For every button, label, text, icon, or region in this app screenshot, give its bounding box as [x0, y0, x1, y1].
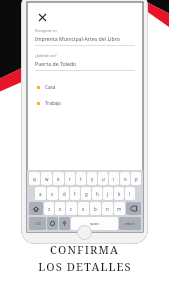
button[interactable]: 123	[29, 217, 46, 230]
staticText: n	[106, 206, 109, 212]
button[interactable]: p	[131, 172, 141, 185]
button[interactable]: Shift	[29, 202, 43, 215]
button[interactable]: Backspace	[126, 202, 141, 215]
staticText: m	[117, 206, 122, 212]
staticText: 123	[35, 222, 41, 226]
button[interactable]: u	[98, 172, 108, 185]
button[interactable]: e	[53, 172, 64, 185]
staticText: l	[129, 191, 131, 197]
button[interactable]: ¿Adónde vas?	[35, 53, 135, 71]
staticText: e	[57, 176, 60, 182]
staticText: o	[124, 176, 127, 182]
button[interactable]: space	[71, 217, 118, 230]
staticText: f	[74, 191, 76, 197]
button[interactable]: r	[65, 172, 75, 185]
staticText: d	[63, 191, 66, 197]
staticText: a	[39, 191, 42, 197]
staticText: space	[90, 221, 100, 226]
button[interactable]: a	[35, 187, 46, 200]
staticText: i	[113, 176, 115, 182]
button[interactable]: Dictate	[59, 217, 70, 230]
button[interactable]: Close	[35, 10, 49, 24]
staticText: j	[107, 191, 109, 197]
staticText: w	[45, 176, 49, 182]
button[interactable]: l	[125, 187, 135, 200]
button[interactable]: k	[114, 187, 124, 200]
staticText: b	[94, 206, 97, 212]
button[interactable]: c	[66, 202, 77, 215]
button[interactable]: i	[109, 172, 119, 185]
button[interactable]: d	[59, 187, 69, 200]
button[interactable]: h	[92, 187, 102, 200]
button[interactable]: q	[29, 172, 40, 185]
button[interactable]: z	[44, 202, 54, 215]
button[interactable]: g	[81, 187, 91, 200]
staticText: return	[125, 222, 135, 226]
button[interactable]: m	[114, 202, 125, 215]
staticText: Puerta de Toledo	[35, 60, 77, 67]
button[interactable]: n	[102, 202, 113, 215]
button[interactable]: o	[120, 172, 130, 185]
staticText: z	[48, 206, 51, 212]
button[interactable]: Home	[77, 225, 92, 240]
button[interactable]: j	[103, 187, 113, 200]
staticText: g	[85, 191, 88, 197]
button[interactable]: w	[41, 172, 52, 185]
staticText: t	[80, 176, 82, 182]
button[interactable]: x	[55, 202, 65, 215]
staticText: Recógeme en	[35, 28, 57, 33]
staticText: x	[59, 206, 62, 212]
staticText: q	[33, 176, 36, 182]
button[interactable]: Recógeme en	[35, 28, 135, 46]
button[interactable]: f	[70, 187, 80, 200]
button[interactable]: y	[87, 172, 97, 185]
button[interactable]: Trabajo	[37, 95, 133, 111]
staticText: r	[69, 176, 71, 182]
staticText: k	[118, 191, 121, 197]
button[interactable]: Emoji	[47, 217, 58, 230]
button[interactable]: b	[90, 202, 101, 215]
staticText: c	[70, 206, 73, 212]
staticText: LOS DETALLES	[38, 259, 132, 274]
staticText: u	[102, 176, 105, 182]
staticText: p	[135, 176, 138, 182]
button[interactable]: t	[76, 172, 86, 185]
staticText: v	[82, 206, 85, 212]
staticText: s	[51, 191, 54, 197]
staticText: CONFIRMA	[50, 242, 119, 257]
staticText: ¿Adónde vas?	[35, 53, 57, 58]
button[interactable]: s	[47, 187, 58, 200]
staticText: Trabajo	[45, 100, 62, 106]
staticText: Casa	[45, 84, 56, 90]
button[interactable]: Casa	[37, 79, 133, 95]
staticText: y	[91, 176, 94, 182]
staticText: h	[96, 191, 99, 197]
button[interactable]: return	[119, 217, 141, 230]
button[interactable]: v	[78, 202, 89, 215]
staticText: Imprenta Municipal-Artes del Libro	[35, 35, 120, 42]
